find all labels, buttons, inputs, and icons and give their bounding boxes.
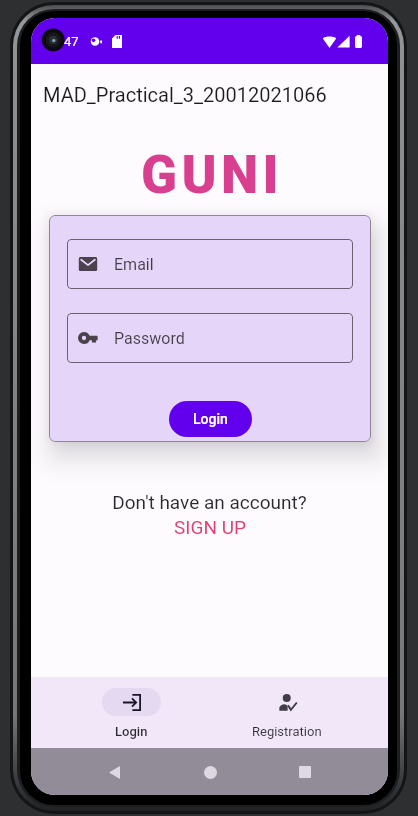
button[interactable]: Password — [67, 313, 353, 363]
button[interactable]: Home — [197, 759, 223, 785]
button[interactable]: Login — [54, 686, 209, 739]
staticText: Login — [115, 724, 148, 739]
staticText: 47 — [64, 34, 79, 49]
staticText: Email — [114, 255, 154, 274]
staticText: MAD_Practical_3_20012021066 — [43, 83, 327, 106]
staticText: GUNI — [36, 144, 388, 206]
button[interactable]: Registration — [209, 686, 365, 739]
other: Registration — [279, 694, 297, 711]
staticText: Password — [114, 329, 185, 348]
other: Login — [123, 694, 141, 711]
button[interactable]: Back — [101, 759, 127, 785]
staticText: Don't have an account? — [31, 491, 388, 513]
button[interactable]: SIGN UP — [166, 515, 254, 539]
staticText: Registration — [252, 724, 322, 739]
button[interactable]: Recents — [292, 759, 318, 785]
button[interactable]: Email — [67, 239, 353, 289]
staticText: SIGN UP — [174, 516, 246, 538]
staticText: Login — [193, 411, 228, 427]
button[interactable]: Login — [169, 401, 252, 437]
